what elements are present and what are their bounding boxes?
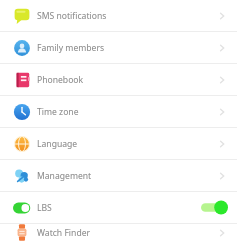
button[interactable]: SMS notifications: [0, 0, 237, 31]
staticText: Watch Finder: [37, 227, 215, 239]
button[interactable]: Management: [0, 160, 237, 191]
button[interactable]: Language: [0, 128, 237, 159]
button[interactable]: Time zone: [0, 96, 237, 127]
other: Open: [215, 105, 229, 119]
button[interactable]: LBS toggle: [201, 200, 229, 215]
staticText: Time zone: [37, 106, 215, 118]
other: Open: [215, 169, 229, 183]
staticText: Language: [37, 138, 215, 150]
other: Open: [215, 226, 229, 240]
staticText: Family members: [37, 42, 215, 54]
staticText: LBS: [37, 202, 201, 214]
other: Open: [215, 73, 229, 87]
button[interactable]: Phonebook: [0, 64, 237, 95]
other: Open: [215, 41, 229, 55]
button[interactable]: LBS: [0, 192, 237, 223]
button[interactable]: Watch Finder: [0, 224, 237, 241]
other: Open: [215, 137, 229, 151]
button[interactable]: Family members: [0, 32, 237, 63]
other: Open: [215, 9, 229, 23]
staticText: Phonebook: [37, 74, 215, 86]
staticText: SMS notifications: [37, 10, 215, 22]
staticText: Management: [37, 170, 215, 182]
